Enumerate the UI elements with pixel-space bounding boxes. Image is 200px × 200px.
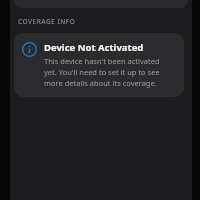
- staticText: This device hasn't been activated yet. Y…: [44, 56, 174, 88]
- other: Information: [22, 42, 37, 57]
- staticText: Device Not Activated: [44, 41, 144, 54]
- button[interactable]: Information: [14, 33, 184, 97]
- staticText: COVERAGE INFO: [18, 17, 76, 26]
